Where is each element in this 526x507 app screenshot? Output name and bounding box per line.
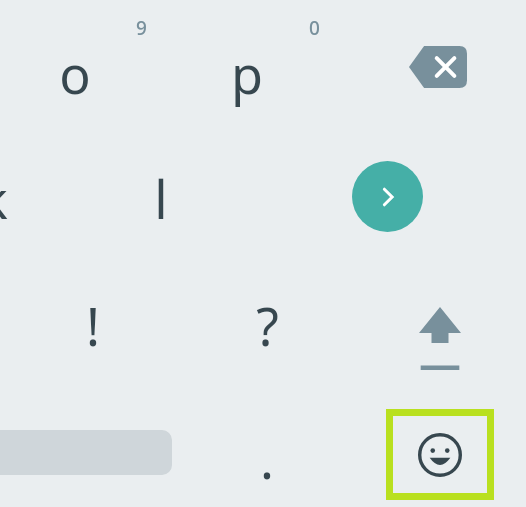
staticText: 9 — [136, 15, 147, 41]
button[interactable]: 9 — [126, 13, 156, 43]
staticText: ? — [256, 290, 279, 360]
button[interactable]: ? — [232, 290, 302, 360]
button[interactable]: . — [232, 423, 302, 493]
staticText: k — [0, 163, 8, 233]
button[interactable]: o — [40, 38, 110, 108]
button[interactable]: p — [212, 38, 282, 108]
staticText: 0 — [309, 15, 320, 41]
button[interactable]: Emoji — [386, 409, 494, 500]
button[interactable]: k — [0, 163, 14, 233]
button[interactable]: 0 — [299, 13, 329, 43]
button[interactable]: Backspace — [388, 28, 488, 106]
button[interactable]: Shift — [390, 290, 490, 390]
staticText: l — [154, 163, 168, 233]
staticText: ! — [86, 290, 100, 360]
button[interactable]: Enter — [352, 161, 423, 232]
staticText: o — [59, 38, 91, 108]
staticText: . — [260, 423, 274, 493]
button[interactable]: ! — [58, 290, 128, 360]
staticText: p — [231, 38, 263, 108]
button[interactable]: l — [126, 163, 196, 233]
